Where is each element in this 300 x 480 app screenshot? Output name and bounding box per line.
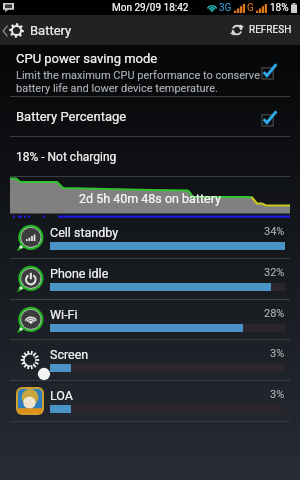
staticText: battery life and lower device temperatur… xyxy=(16,82,218,95)
button[interactable]: CPU power saving mode xyxy=(0,45,300,96)
staticText: 3% xyxy=(270,347,285,360)
staticText: Wi-Fi xyxy=(50,307,78,322)
staticText: Mon 29/09 18:42 xyxy=(112,2,189,14)
button[interactable]: Battery Percentage xyxy=(0,97,300,136)
staticText: 3G xyxy=(219,2,232,14)
staticText: Battery Percentage xyxy=(16,109,127,124)
staticText: Cell standby xyxy=(50,225,119,240)
staticText: 3% xyxy=(270,388,285,401)
button[interactable]: Screen xyxy=(0,340,300,380)
button[interactable]: Phone idle xyxy=(0,259,300,299)
staticText: Battery xyxy=(30,23,72,38)
staticText: 2d 5h 40m 48s on battery xyxy=(79,191,221,206)
button[interactable]: Navigate up xyxy=(0,23,28,38)
staticText: LOA xyxy=(50,388,73,403)
staticText: Limit the maximum CPU performance to con… xyxy=(16,69,260,82)
button[interactable]: Cell standby xyxy=(0,218,300,258)
staticText: 34% xyxy=(264,225,285,238)
staticText: 32% xyxy=(264,266,285,279)
button[interactable]: REFRESH xyxy=(222,23,300,37)
button[interactable]: LOA xyxy=(0,381,300,421)
button[interactable]: Wi-Fi xyxy=(0,300,300,339)
staticText: 18% - Not charging xyxy=(16,150,117,164)
staticText: CPU power saving mode xyxy=(16,51,158,66)
staticText: Screen xyxy=(50,347,89,362)
button[interactable]: Toggle xyxy=(258,57,284,83)
staticText: 28% xyxy=(264,307,285,320)
staticText: 18% xyxy=(270,2,289,14)
staticText: REFRESH xyxy=(249,24,292,36)
staticText: G xyxy=(247,2,254,14)
button[interactable]: Toggle xyxy=(258,104,284,130)
staticText: Phone idle xyxy=(50,266,109,281)
